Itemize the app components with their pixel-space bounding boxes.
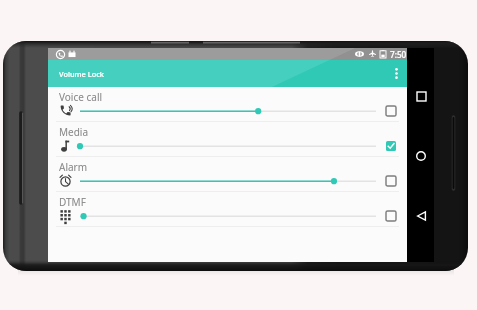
- staticText: Voice call: [59, 90, 103, 104]
- button[interactable]: Home: [412, 147, 430, 165]
- staticText: Volume Lock: [59, 69, 104, 79]
- staticText: DTMF: [59, 195, 86, 209]
- button[interactable]: Alarm: [48, 157, 407, 192]
- button[interactable]: Back: [412, 207, 430, 225]
- button[interactable]: Lock Alarm volume: [380, 170, 401, 191]
- button[interactable]: Lock DTMF volume: [380, 205, 401, 226]
- button[interactable]: Voice call: [48, 87, 407, 122]
- staticText: 7:50: [390, 49, 407, 60]
- staticText: Alarm: [59, 160, 88, 174]
- button[interactable]: Media: [48, 122, 407, 157]
- button[interactable]: Lock Media volume: [380, 135, 401, 156]
- button[interactable]: DTMF: [48, 192, 407, 227]
- button[interactable]: Lock Voice call volume: [380, 100, 401, 121]
- button[interactable]: More options: [385, 60, 407, 87]
- button[interactable]: Recent apps: [412, 87, 430, 105]
- staticText: Media: [59, 125, 89, 139]
